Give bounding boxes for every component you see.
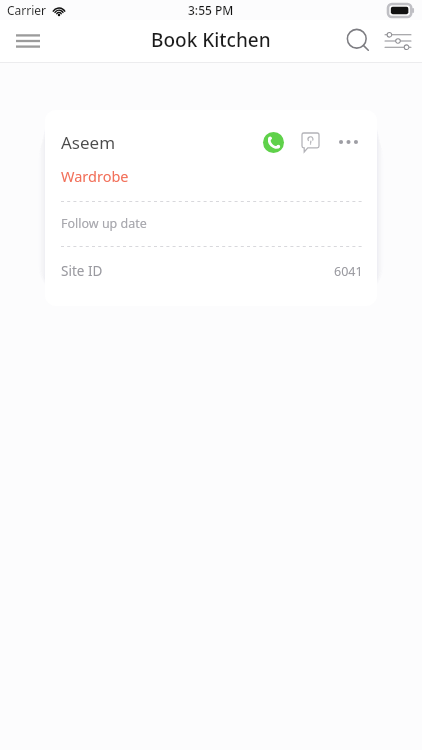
staticText: Carrier xyxy=(7,2,47,18)
staticText: Site ID xyxy=(61,262,103,280)
button[interactable]: Search xyxy=(339,21,379,61)
staticText: Book Kitchen xyxy=(151,27,271,53)
button[interactable]: Query xyxy=(295,127,325,157)
staticText: Aseem xyxy=(61,131,116,154)
button[interactable]: More options xyxy=(333,127,363,157)
staticText: 6041 xyxy=(334,263,363,280)
staticText: 3:55 PM xyxy=(188,2,234,18)
button[interactable]: Filter xyxy=(379,22,417,60)
staticText: Follow up date xyxy=(61,215,147,232)
button[interactable]: Aseem xyxy=(45,110,377,306)
button[interactable]: Call xyxy=(257,126,289,158)
staticText: Wardrobe xyxy=(61,166,129,186)
button[interactable]: Menu xyxy=(6,20,50,62)
